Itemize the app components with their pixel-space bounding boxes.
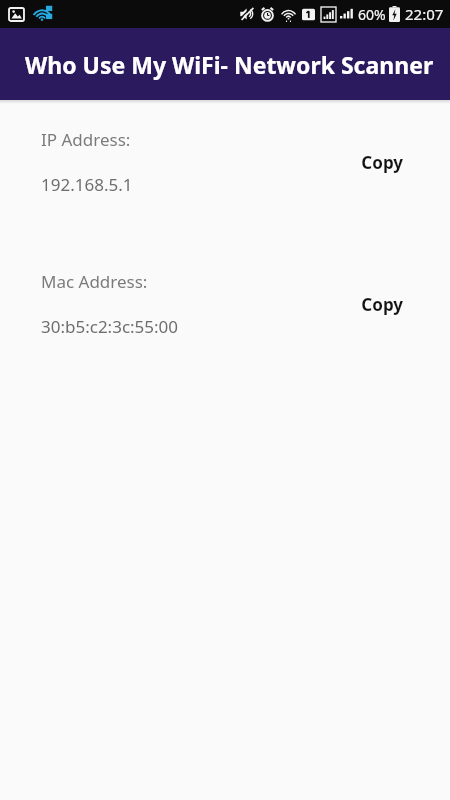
staticText: 60% xyxy=(358,5,386,24)
staticText: Mac Address: xyxy=(41,270,148,293)
staticText: Copy xyxy=(361,151,403,174)
staticText: IP Address: xyxy=(41,128,131,151)
staticText: 22:07 xyxy=(405,4,444,24)
staticText: Copy xyxy=(361,293,403,316)
staticText: 30:b5:c2:3c:55:00 xyxy=(41,315,179,338)
button[interactable]: Copy xyxy=(359,290,405,319)
staticText: 192.168.5.1 xyxy=(41,173,133,196)
staticText: Who Use My WiFi- Network Scanner xyxy=(25,49,434,80)
button[interactable]: Copy xyxy=(359,148,405,177)
